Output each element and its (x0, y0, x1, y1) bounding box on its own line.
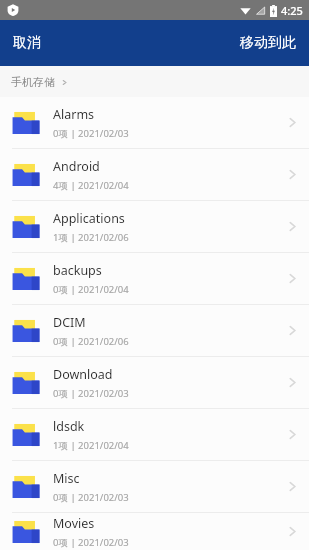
staticText: Download (53, 366, 113, 383)
staticText: 1项 | 2021/02/06 (53, 231, 129, 244)
button[interactable]: ldsdk (0, 409, 309, 460)
button[interactable]: backups (0, 253, 309, 304)
staticText: Applications (53, 210, 125, 227)
button[interactable]: Misc (0, 461, 309, 512)
staticText: Alarms (53, 106, 95, 123)
button[interactable]: 取消 (0, 24, 54, 62)
button[interactable]: Movies (0, 513, 309, 550)
staticText: DCIM (53, 314, 86, 331)
staticText: 取消 (13, 34, 41, 52)
staticText: 手机存储 (11, 75, 55, 89)
staticText: Movies (53, 515, 95, 532)
staticText: 0项 | 2021/02/03 (53, 536, 129, 549)
button[interactable]: Applications (0, 201, 309, 252)
staticText: 1项 | 2021/02/04 (53, 439, 129, 452)
button[interactable]: Alarms (0, 97, 309, 148)
staticText: 0项 | 2021/02/03 (53, 127, 129, 140)
button[interactable]: 移动到此 (227, 24, 309, 62)
staticText: 4项 | 2021/02/04 (53, 179, 129, 192)
staticText: ldsdk (53, 418, 85, 435)
staticText: 0项 | 2021/02/03 (53, 387, 129, 400)
staticText: Android (53, 158, 100, 175)
staticText: 0项 | 2021/02/03 (53, 491, 129, 504)
staticText: 0项 | 2021/02/04 (53, 283, 129, 296)
button[interactable]: DCIM (0, 305, 309, 356)
staticText: 4:25 (281, 3, 303, 18)
staticText: 0项 | 2021/02/06 (53, 335, 129, 348)
button[interactable]: Android (0, 149, 309, 200)
staticText: backups (53, 262, 102, 279)
staticText: Misc (53, 470, 80, 487)
staticText: 移动到此 (240, 34, 296, 52)
button[interactable]: Download (0, 357, 309, 408)
button[interactable]: 手机存储 (0, 70, 79, 94)
